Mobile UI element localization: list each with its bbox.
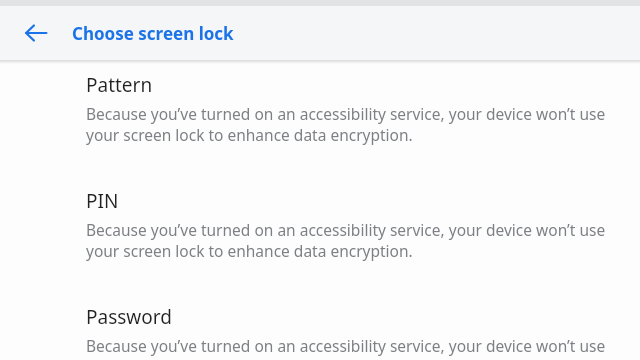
staticText: Because you’ve turned on an accessibilit… bbox=[86, 335, 622, 360]
button[interactable]: Back bbox=[14, 11, 58, 55]
staticText: Password bbox=[86, 304, 172, 330]
staticText: Because you’ve turned on an accessibilit… bbox=[86, 103, 622, 146]
staticText: Because you’ve turned on an accessibilit… bbox=[86, 219, 622, 262]
button[interactable]: Password bbox=[0, 304, 640, 360]
staticText: PIN bbox=[86, 188, 119, 214]
button[interactable]: Pattern bbox=[0, 72, 640, 146]
button[interactable]: PIN bbox=[0, 188, 640, 262]
staticText: Pattern bbox=[86, 72, 153, 98]
staticText: Choose screen lock bbox=[72, 22, 234, 45]
